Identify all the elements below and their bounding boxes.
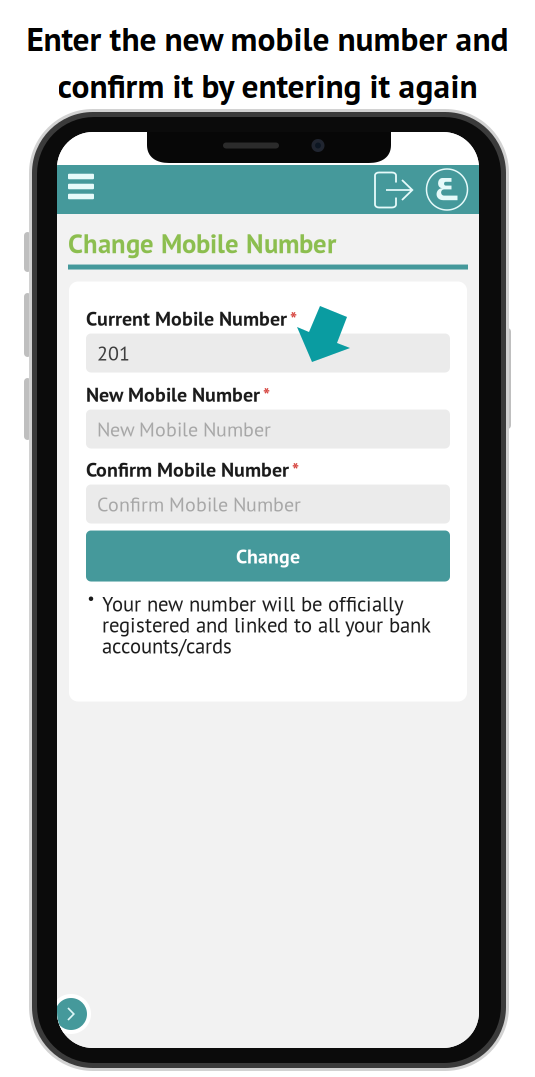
staticText: 201: [97, 340, 130, 366]
staticText: Change Mobile Number: [68, 226, 336, 260]
staticText: Current Mobile Number: [86, 305, 287, 331]
button[interactable]: Next: [51, 994, 91, 1034]
button[interactable]: Account: [414, 165, 479, 214]
staticText: registered and linked to all your bank: [102, 611, 431, 638]
staticText: New Mobile Number: [97, 416, 271, 442]
staticText: accounts/cards: [102, 632, 232, 659]
staticText: *: [290, 307, 297, 332]
staticText: Change: [236, 543, 300, 569]
button[interactable]: Change: [86, 530, 450, 581]
staticText: New Mobile Number: [86, 381, 260, 407]
staticText: Your new number will be officially: [102, 590, 404, 617]
staticText: *: [292, 458, 299, 483]
staticText: confirm it by entering it again: [57, 64, 477, 107]
staticText: Confirm Mobile Number: [86, 456, 289, 482]
button[interactable]: Menu: [57, 165, 102, 214]
staticText: Confirm Mobile Number: [97, 491, 301, 517]
staticText: *: [263, 383, 270, 408]
button[interactable]: Log out: [374, 165, 414, 214]
staticText: Enter the new mobile number and: [26, 17, 508, 60]
